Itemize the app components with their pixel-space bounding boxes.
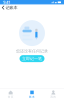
staticText: 记账本 <box>5 5 17 10</box>
button[interactable]: 立即记一笔 <box>19 55 44 62</box>
staticText: 立即记一笔 <box>22 56 42 61</box>
staticText: 9:41 <box>3 0 10 5</box>
button[interactable]: 记账本 <box>0 5 17 11</box>
staticText: 账本 <box>29 95 35 98</box>
staticText: 我的 <box>50 95 56 98</box>
button[interactable]: 我的 <box>43 89 64 100</box>
staticText: 您还没有任何记录 <box>16 49 48 53</box>
button[interactable]: 首页 <box>0 89 21 100</box>
button[interactable]: 账本 <box>21 89 43 100</box>
staticText: 首页 <box>8 95 14 98</box>
